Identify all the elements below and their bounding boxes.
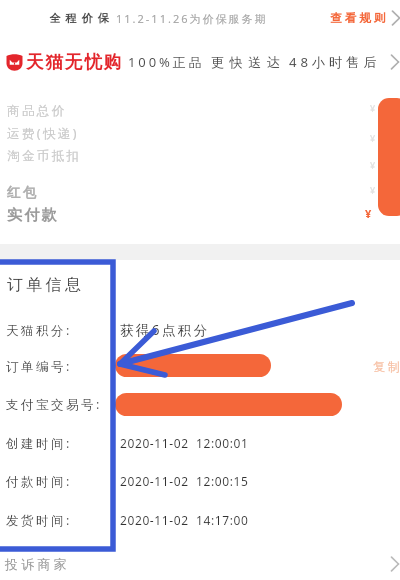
button[interactable]: 红包 — [0, 181, 400, 203]
staticText: 获得6点积分 — [120, 321, 210, 339]
staticText: 天猫积分: — [6, 322, 72, 339]
staticText: 查看规则 — [329, 11, 387, 25]
staticText: 付款时间: — [6, 473, 72, 490]
staticText: ¥ — [370, 102, 376, 114]
other: View rules — [391, 9, 400, 27]
staticText: 淘金币抵扣 — [7, 148, 82, 164]
button[interactable]: 天猫积分: — [0, 318, 400, 342]
button[interactable]: 商品总价 — [0, 100, 400, 122]
button[interactable]: 付款时间: — [0, 469, 400, 493]
button[interactable]: 支付宝交易号: — [0, 392, 400, 416]
staticText: 2020-11-02 12:00:15 — [120, 473, 249, 489]
other: Complain to seller — [390, 555, 400, 573]
staticText: 100%正品 — [128, 53, 205, 71]
staticText: 支付宝交易号: — [6, 396, 102, 413]
staticText: 更快送达 — [211, 54, 285, 71]
staticText: 11.2-11.26为价保服务期 — [116, 11, 268, 26]
staticText: ¥ — [370, 132, 376, 144]
button[interactable]: 复制 — [369, 355, 400, 377]
staticText: 订单编号: — [6, 358, 72, 375]
staticText: ¥ — [365, 206, 372, 221]
staticText: 发货时间: — [6, 512, 72, 529]
button[interactable]: 发货时间: — [0, 508, 400, 532]
staticText: 运费(快递) — [7, 125, 79, 142]
staticText: 48小时售后 — [289, 53, 381, 71]
staticText: 创建时间: — [6, 435, 72, 452]
staticText: 天猫无忧购 — [25, 51, 122, 73]
staticText: 实付款 — [7, 206, 60, 225]
button[interactable]: 天猫无忧购 — [0, 44, 400, 80]
staticText: 投诉商家 — [5, 556, 70, 572]
staticText: 订单信息 — [7, 275, 85, 295]
button[interactable]: 全程价保 — [0, 0, 400, 36]
button[interactable]: 查看规则 — [326, 5, 400, 31]
staticText: 2020-11-02 12:00:01 — [120, 435, 249, 451]
button[interactable]: 订单编号: — [0, 354, 400, 378]
staticText: 商品总价 — [7, 103, 67, 119]
button[interactable]: 运费(快递) — [0, 122, 400, 144]
other: More — [390, 53, 400, 71]
button[interactable]: 创建时间: — [0, 431, 400, 455]
button[interactable]: 实付款 — [0, 204, 400, 226]
staticText: ¥ — [370, 184, 376, 196]
staticText: 复制 — [372, 359, 400, 374]
staticText: 2020-11-02 14:17:00 — [120, 512, 249, 528]
button[interactable]: 投诉商家 — [0, 547, 400, 577]
staticText: ¥ — [370, 159, 376, 171]
staticText: 全程价保 — [47, 11, 111, 25]
staticText: 红包 — [7, 184, 39, 201]
button[interactable]: 淘金币抵扣 — [0, 145, 400, 167]
